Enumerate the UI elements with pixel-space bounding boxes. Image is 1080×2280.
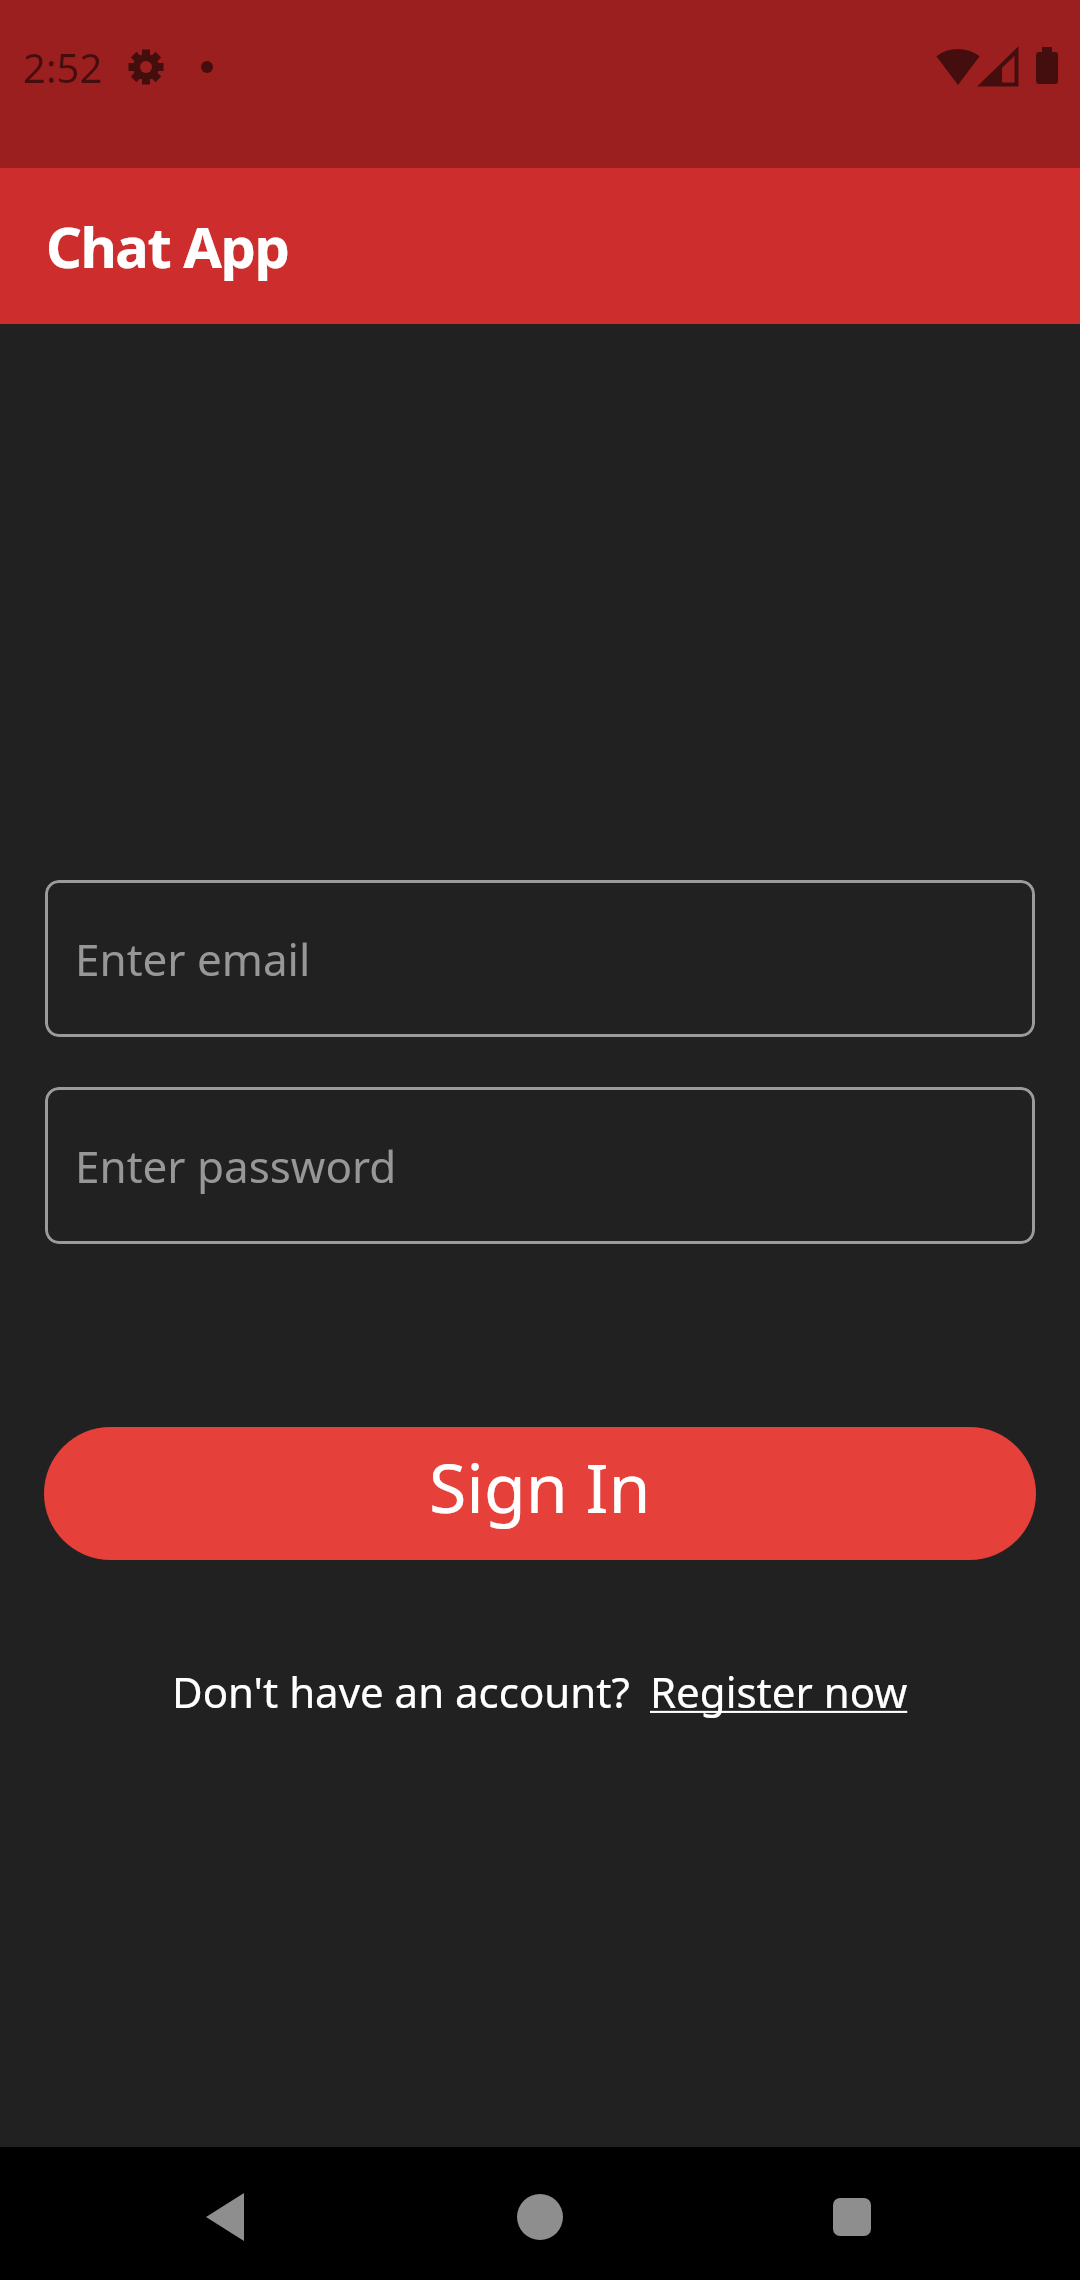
staticText: Chat App (46, 208, 289, 284)
button[interactable]: Register now (650, 1663, 908, 1720)
button[interactable]: Enter password (45, 1087, 1035, 1244)
staticText: Sign In (429, 1440, 651, 1533)
staticText: Enter email (75, 929, 311, 989)
staticText: Don't have an account? (172, 1663, 630, 1720)
button[interactable] (0, 2147, 360, 2280)
staticText: 2:52 (23, 40, 103, 94)
button[interactable] (360, 2147, 720, 2280)
button[interactable]: Enter email (45, 880, 1035, 1037)
staticText: Enter password (75, 1136, 397, 1196)
button[interactable]: Sign In (44, 1427, 1036, 1560)
button[interactable] (720, 2147, 1080, 2280)
